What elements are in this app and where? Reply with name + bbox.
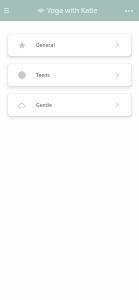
button[interactable]: General bbox=[8, 34, 131, 56]
button[interactable]: Menu bbox=[0, 0, 13, 21]
staticText: Yoga with Katie bbox=[47, 6, 98, 16]
staticText: General bbox=[36, 42, 55, 49]
button[interactable]: Teens bbox=[8, 64, 131, 86]
button[interactable]: Gentle bbox=[8, 94, 131, 116]
staticText: Gentle bbox=[36, 102, 52, 109]
button[interactable]: More options bbox=[118, 0, 139, 21]
staticText: Teens bbox=[36, 72, 50, 79]
